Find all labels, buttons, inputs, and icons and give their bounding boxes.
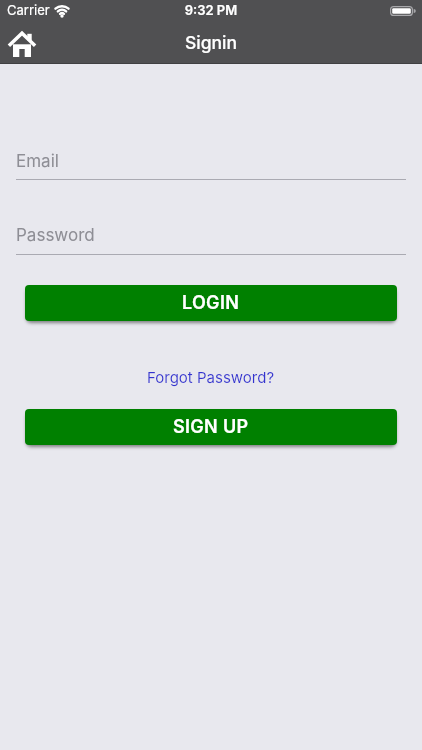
- staticText: Signin: [0, 32, 422, 53]
- button[interactable]: Email: [16, 146, 406, 180]
- button[interactable]: LOGIN: [25, 285, 397, 321]
- staticText: Carrier: [7, 2, 50, 18]
- button[interactable]: [2, 27, 42, 61]
- button[interactable]: Forgot Password?: [147, 368, 275, 386]
- button[interactable]: SIGN UP: [25, 409, 397, 445]
- staticText: LOGIN: [182, 292, 240, 314]
- staticText: Email: [16, 151, 59, 172]
- button[interactable]: Password: [16, 221, 406, 255]
- staticText: 9:32 PM: [0, 2, 422, 18]
- staticText: Password: [16, 225, 95, 246]
- staticText: SIGN UP: [173, 416, 249, 438]
